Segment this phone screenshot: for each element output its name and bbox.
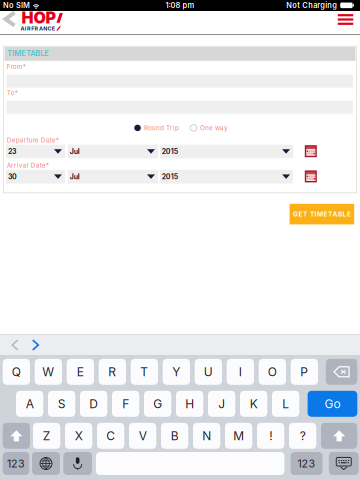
staticText: AIRFRANCE xyxy=(20,25,55,32)
staticText: B xyxy=(171,428,179,443)
button[interactable]: X xyxy=(65,423,92,449)
staticText: X xyxy=(75,428,83,443)
button[interactable]: Change keyboard xyxy=(32,452,60,475)
button[interactable]: Z xyxy=(33,423,60,449)
button[interactable]: G xyxy=(144,391,171,417)
staticText: Y xyxy=(172,364,180,379)
button[interactable]: Back xyxy=(5,12,14,25)
button[interactable]: I xyxy=(227,359,254,385)
button[interactable]: H xyxy=(176,391,203,417)
staticText: One way xyxy=(200,124,228,132)
button[interactable]: 30 xyxy=(6,170,65,183)
button[interactable]: Go xyxy=(308,391,357,417)
button[interactable]: Shift xyxy=(321,423,357,449)
staticText: K xyxy=(250,396,258,411)
button[interactable]: 2015 xyxy=(160,145,293,158)
button[interactable]: P xyxy=(291,359,318,385)
staticText: W xyxy=(42,364,54,379)
staticText: Z xyxy=(43,428,51,443)
staticText: 30 xyxy=(8,172,17,181)
staticText: Not Charging xyxy=(286,1,337,10)
staticText: GET TIMETABLE xyxy=(293,210,351,218)
button[interactable]: Menu xyxy=(338,14,353,25)
staticText: P xyxy=(300,364,308,379)
button[interactable]: Jul xyxy=(68,145,158,158)
button[interactable]: Round Trip xyxy=(134,124,190,132)
button[interactable]: Shift xyxy=(3,423,30,449)
button[interactable]: N xyxy=(193,423,220,449)
button[interactable]: B xyxy=(161,423,188,449)
button[interactable]: 123 xyxy=(3,452,29,475)
staticText: D xyxy=(89,396,98,411)
staticText: Arrival Date* xyxy=(7,161,49,169)
button[interactable]: R xyxy=(99,359,126,385)
button[interactable]: E xyxy=(67,359,94,385)
button[interactable]: U xyxy=(195,359,222,385)
staticText: T xyxy=(140,364,148,379)
staticText: S xyxy=(58,396,66,411)
staticText: ? xyxy=(300,428,306,443)
button[interactable]: One way xyxy=(190,124,242,132)
staticText: 23 xyxy=(8,147,16,156)
staticText: L xyxy=(282,396,289,411)
button[interactable]: Y xyxy=(163,359,190,385)
staticText: V xyxy=(139,428,147,443)
staticText: R xyxy=(108,364,116,379)
button[interactable]: J xyxy=(208,391,235,417)
button[interactable]: F xyxy=(112,391,139,417)
button[interactable]: C xyxy=(97,423,124,449)
staticText: To* xyxy=(7,89,18,97)
button[interactable]: Dictate xyxy=(63,452,92,475)
button[interactable]: 123 xyxy=(291,452,322,475)
button[interactable]: ! xyxy=(257,423,284,449)
staticText: Round Trip xyxy=(144,124,179,132)
staticText: 2015 xyxy=(162,172,178,181)
button[interactable]: V xyxy=(129,423,156,449)
staticText: M xyxy=(233,428,244,443)
staticText: 123 xyxy=(7,457,25,470)
staticText: From* xyxy=(7,63,26,70)
button[interactable]: 23 xyxy=(6,145,65,158)
button[interactable]: GET TIMETABLE xyxy=(290,204,354,224)
staticText: 123 xyxy=(298,457,316,470)
button[interactable]: Q xyxy=(3,359,30,385)
staticText: ! xyxy=(269,428,272,443)
button[interactable]: Previous field xyxy=(12,340,18,350)
staticText: E xyxy=(77,364,84,379)
button[interactable]: ? xyxy=(289,423,316,449)
button[interactable]: Hide keyboard xyxy=(329,452,359,475)
button[interactable]: Next field xyxy=(33,340,38,350)
staticText: Go xyxy=(324,396,340,411)
button[interactable]: D xyxy=(80,391,107,417)
staticText: 1:08 pm xyxy=(165,1,194,10)
staticText: Q xyxy=(12,364,21,379)
staticText: A xyxy=(26,396,34,411)
button[interactable]: M xyxy=(225,423,252,449)
button[interactable]: O xyxy=(259,359,286,385)
button[interactable]: Jul xyxy=(68,170,158,183)
button[interactable]: 2015 xyxy=(160,170,293,183)
button[interactable]: W xyxy=(35,359,62,385)
staticText: N xyxy=(202,428,211,443)
button[interactable]: L xyxy=(272,391,299,417)
button[interactable]: Pick date xyxy=(305,145,317,157)
staticText: J xyxy=(218,396,225,411)
button[interactable]: Backspace xyxy=(326,359,357,385)
button[interactable]: K xyxy=(240,391,267,417)
button[interactable]: A xyxy=(16,391,43,417)
button[interactable]: T xyxy=(131,359,158,385)
staticText: H xyxy=(185,396,194,411)
staticText: C xyxy=(106,428,115,443)
staticText: Jul xyxy=(70,147,80,156)
button[interactable]: Pick date xyxy=(305,170,317,182)
staticText: No SIM xyxy=(3,1,30,10)
staticText: Departure Date* xyxy=(7,136,59,144)
staticText: HOP xyxy=(21,8,56,27)
staticText: F xyxy=(122,396,129,411)
staticText: Jul xyxy=(70,172,80,181)
button[interactable]: S xyxy=(48,391,75,417)
staticText: G xyxy=(153,396,162,411)
